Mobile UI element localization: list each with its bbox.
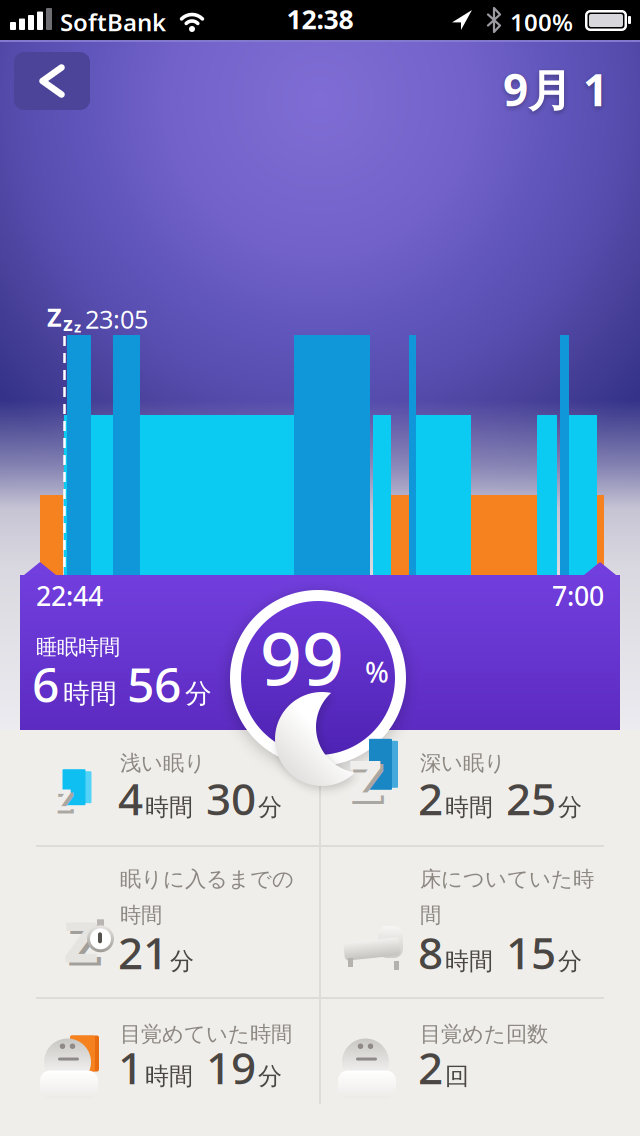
staticText: 分 (258, 793, 282, 822)
staticText: 99 (260, 608, 344, 706)
staticText: 100% (510, 6, 573, 38)
staticText: 22:44 (36, 578, 103, 613)
staticText: 30 (195, 769, 256, 827)
staticText: 23:05 (85, 302, 148, 336)
staticText: 時間 (445, 793, 493, 822)
staticText: 時間 (145, 1062, 193, 1091)
staticText: 分 (558, 793, 582, 822)
staticText: 睡眠時間 (36, 634, 120, 660)
staticText: 時間 (120, 902, 162, 928)
staticText: 25 (495, 769, 556, 827)
staticText: z (63, 310, 73, 337)
staticText: 4 (118, 769, 143, 827)
staticText: 深い眠り (420, 750, 506, 776)
staticText: z (347, 724, 383, 821)
staticText: 1 (118, 1038, 143, 1096)
staticText: z (63, 885, 99, 983)
staticText: 15 (495, 923, 556, 981)
staticText: Z (47, 300, 62, 334)
staticText: 6 (32, 652, 59, 716)
staticText: 目覚めていた時間 (120, 1021, 292, 1047)
staticText: 12:38 (286, 1, 353, 37)
staticText: 床についていた時 (420, 866, 594, 892)
staticText: 目覚めた回数 (420, 1021, 548, 1047)
staticText: 56 (127, 652, 181, 716)
staticText: % (365, 653, 389, 691)
staticText: z (53, 771, 71, 821)
staticText: z (74, 317, 81, 336)
staticText: 9月 1 (503, 60, 608, 118)
button[interactable]: Back (14, 52, 90, 110)
staticText: 浅い眠り (120, 750, 206, 776)
staticText: 21 (118, 923, 168, 981)
staticText: 時間 (145, 793, 193, 822)
staticText: 分 (558, 947, 582, 976)
staticText: 間 (420, 902, 441, 928)
staticText: 眠りに入るまでの (120, 866, 294, 892)
staticText: SoftBank (60, 6, 166, 38)
staticText: z (350, 727, 386, 824)
staticText: 分 (185, 677, 212, 710)
staticText: 19 (195, 1038, 256, 1096)
staticText: 分 (258, 1062, 282, 1091)
staticText: 時間 (445, 947, 493, 976)
staticText: 回 (445, 1062, 469, 1091)
staticText: 2 (418, 1038, 443, 1096)
staticText: 7:00 (552, 578, 604, 613)
staticText: 分 (170, 947, 194, 976)
staticText: z (67, 888, 103, 986)
staticText: 時間 (63, 677, 117, 710)
staticText: 8 (418, 923, 443, 981)
staticText: z (56, 774, 74, 824)
staticText: 2 (418, 769, 443, 827)
